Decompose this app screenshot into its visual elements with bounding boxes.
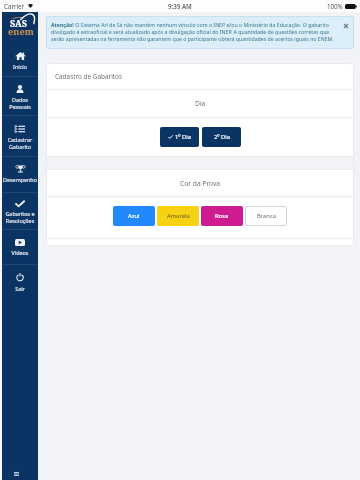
staticText: Azul [128, 212, 140, 220]
staticText: Dia [195, 99, 206, 108]
button[interactable]: Amarela [157, 206, 199, 226]
staticText: Gabaritos e Resoluções [2, 210, 38, 224]
staticText: Início [2, 63, 38, 70]
button[interactable]: Desempenho [2, 157, 38, 193]
staticText: SAS [10, 17, 28, 29]
button[interactable]: Branca [245, 206, 287, 226]
staticText: Rosa [215, 212, 229, 220]
staticText: Amarela [167, 212, 190, 220]
staticText: Cor da Prova [180, 179, 221, 188]
staticText: Vídeos [2, 249, 38, 256]
button[interactable]: Sair [2, 265, 38, 299]
button[interactable]: Cadastrar Gabarito [2, 116, 38, 157]
staticText: 100% [327, 2, 343, 10]
staticText: 9:39 AM [168, 2, 192, 10]
button[interactable]: Gabaritos e Resoluções [2, 193, 38, 230]
staticText: Carrier [4, 2, 25, 10]
staticText: Cadastrar Gabarito [2, 136, 38, 150]
button[interactable]: 2º Dia [202, 127, 241, 147]
staticText: Atenção! O Sistema Ari de Sá não mantém … [51, 21, 341, 42]
button[interactable]: Fechar aviso [341, 21, 350, 30]
button[interactable]: Início [2, 44, 38, 77]
staticText: 2º Dia [214, 133, 230, 141]
button[interactable]: Rosa [201, 206, 243, 226]
staticText: Sair [2, 285, 38, 292]
staticText: Dados Pessoais [2, 96, 38, 110]
button[interactable]: Menu [2, 463, 38, 480]
button[interactable]: 1º Dia [160, 127, 199, 147]
staticText: Desempenho [2, 176, 38, 183]
staticText: 1º Dia [175, 133, 191, 141]
button[interactable]: Vídeos [2, 230, 38, 265]
staticText: enem [8, 25, 34, 38]
staticText: Branca [257, 212, 276, 220]
button[interactable]: Dados Pessoais [2, 77, 38, 116]
staticText: Cadastro de Gabaritos [55, 72, 123, 81]
button[interactable]: Azul [113, 206, 155, 226]
